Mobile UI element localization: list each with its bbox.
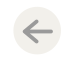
button[interactable]: Back — [0, 0, 84, 58]
